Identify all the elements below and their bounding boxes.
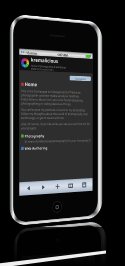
staticText: Home xyxy=(25,81,38,88)
staticText: Web Authoring xyxy=(25,145,48,151)
staticText: And, of course, if you like what you see… xyxy=(21,122,91,130)
button[interactable]: Home xyxy=(52,201,62,213)
staticText: This is the homepage and playground of f… xyxy=(21,89,91,106)
button[interactable]: Share xyxy=(52,180,63,193)
staticText: You can browse my portfolio of work or m… xyxy=(21,108,91,120)
staticText: In need of professional photography for … xyxy=(25,138,91,144)
button[interactable]: Back xyxy=(25,256,35,266)
button[interactable]: Share xyxy=(52,254,63,266)
button[interactable]: Pages xyxy=(80,252,91,266)
staticText: Photography xyxy=(25,133,45,139)
button[interactable]: Forward xyxy=(38,180,49,194)
button[interactable]: Forward xyxy=(38,255,49,266)
staticText: Matthias Kretschmann xyxy=(31,67,54,71)
button[interactable]: Bookmarks xyxy=(65,179,76,192)
button[interactable]: Pages xyxy=(79,178,89,191)
staticText: Carrier xyxy=(27,50,38,55)
button[interactable]: iPhone showing the kremalicious website xyxy=(13,220,106,266)
staticText: Home of photography & webdesign xyxy=(31,64,66,68)
staticText: 1:07 AM xyxy=(57,52,68,56)
button[interactable]: Navigation xyxy=(69,75,91,81)
staticText: Navigation xyxy=(75,77,86,81)
button[interactable]: Back xyxy=(23,181,34,195)
staticText: kremalicious xyxy=(31,56,59,65)
button[interactable]: iPhone showing the kremalicious website xyxy=(9,13,102,227)
button[interactable]: Bookmarks xyxy=(65,253,76,266)
